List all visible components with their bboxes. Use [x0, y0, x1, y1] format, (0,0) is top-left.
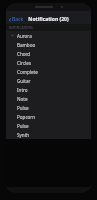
button[interactable]: Popcorn [6, 112, 91, 121]
button[interactable]: Intro [6, 85, 91, 94]
button[interactable]: Bamboo [6, 40, 91, 49]
staticText: Back [12, 16, 24, 23]
button[interactable]: Chord [6, 49, 91, 58]
staticText: Bamboo [17, 42, 36, 48]
staticText: Synth [17, 132, 30, 138]
staticText: Guitar [17, 78, 31, 84]
button[interactable]: Guitar [6, 76, 91, 85]
button[interactable]: Expand [6, 31, 91, 40]
button[interactable]: Complete [6, 67, 91, 76]
staticText: Popcorn [17, 114, 36, 120]
staticText: Pulse [17, 105, 29, 111]
staticText: Complete [17, 69, 38, 75]
button[interactable]: Back [6, 15, 27, 24]
staticText: NOTIFICATIONS [9, 26, 33, 30]
staticText: Note [17, 96, 28, 102]
button[interactable]: Synth [6, 130, 91, 139]
staticText: Aurora [17, 33, 32, 39]
button[interactable]: Pulse [6, 103, 91, 112]
staticText: Pulse [17, 123, 29, 129]
button[interactable]: Note [6, 94, 91, 103]
other: Expand [11, 34, 14, 37]
staticText: Intro [17, 87, 28, 93]
staticText: Circles [17, 60, 32, 66]
button[interactable]: Circles [6, 58, 91, 67]
staticText: Notification (20) [28, 16, 69, 23]
staticText: Chord [17, 51, 31, 57]
button[interactable]: Pulse [6, 121, 91, 130]
